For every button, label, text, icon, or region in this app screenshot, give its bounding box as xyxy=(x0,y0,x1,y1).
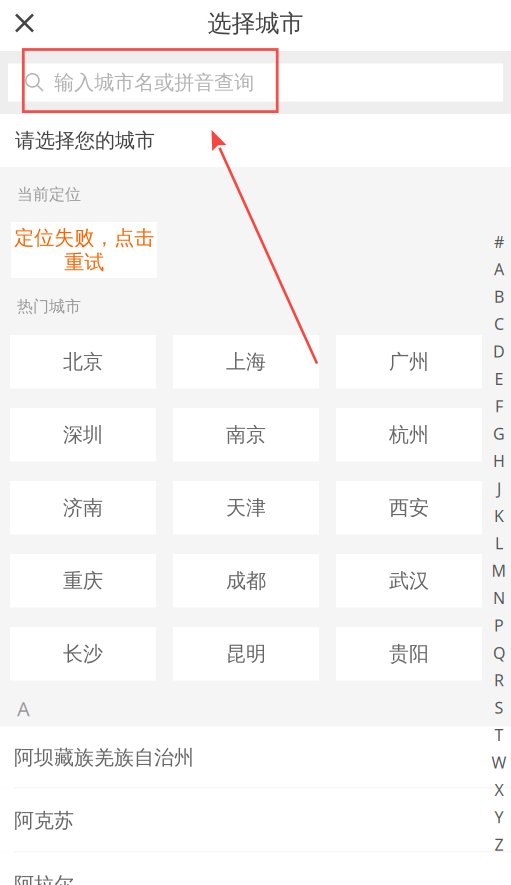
button[interactable]: Q xyxy=(487,639,511,666)
staticText: L xyxy=(495,532,503,554)
staticText: 定位失败，点击重试 xyxy=(14,225,154,274)
staticText: 武汉 xyxy=(389,568,429,593)
button[interactable]: H xyxy=(487,447,511,475)
button[interactable]: F xyxy=(487,392,511,420)
button[interactable]: 输入城市名或拼音查询 xyxy=(8,63,503,101)
button[interactable]: 贵阳 xyxy=(336,627,482,680)
staticText: 昆明 xyxy=(226,641,266,666)
button[interactable]: 定位失败，点击重试 xyxy=(11,222,157,278)
staticText: X xyxy=(494,779,503,800)
staticText: M xyxy=(491,560,506,581)
staticText: 天津 xyxy=(226,495,266,520)
staticText: 阿拉尔 xyxy=(14,872,74,885)
staticText: G xyxy=(493,423,505,444)
button[interactable]: Y xyxy=(487,803,511,831)
button[interactable]: Close xyxy=(0,0,49,48)
button[interactable]: 昆明 xyxy=(173,627,319,680)
button[interactable]: C xyxy=(487,310,511,338)
button[interactable]: B xyxy=(487,283,511,310)
button[interactable]: D xyxy=(487,338,511,365)
button[interactable]: 济南 xyxy=(10,481,156,534)
button[interactable]: # xyxy=(487,228,511,255)
button[interactable]: 西安 xyxy=(336,481,482,534)
staticText: 西安 xyxy=(389,495,429,520)
staticText: D xyxy=(493,341,505,362)
button[interactable]: 阿克苏 xyxy=(0,788,511,852)
staticText: 广州 xyxy=(389,349,429,374)
staticText: 阿克苏 xyxy=(14,808,74,833)
button[interactable]: R xyxy=(487,666,511,694)
button[interactable]: Z xyxy=(487,831,511,858)
staticText: 热门城市 xyxy=(17,297,81,316)
staticText: N xyxy=(493,587,505,608)
staticText: 济南 xyxy=(63,495,103,520)
button[interactable]: P xyxy=(487,612,511,639)
button[interactable]: W xyxy=(487,749,511,776)
button[interactable]: 杭州 xyxy=(336,408,482,461)
button[interactable]: 武汉 xyxy=(336,554,482,607)
staticText: W xyxy=(491,752,506,773)
staticText: B xyxy=(494,286,504,307)
staticText: H xyxy=(493,450,505,471)
staticText: 请选择您的城市 xyxy=(15,128,155,153)
button[interactable]: 天津 xyxy=(173,481,319,534)
staticText: Q xyxy=(493,642,505,663)
staticText: K xyxy=(494,505,504,526)
button[interactable]: G xyxy=(487,420,511,447)
staticText: 当前定位 xyxy=(17,185,81,204)
button[interactable]: N xyxy=(487,584,511,612)
button[interactable]: 南京 xyxy=(173,408,319,461)
staticText: T xyxy=(494,724,503,745)
button[interactable]: J xyxy=(487,475,511,502)
staticText: 南京 xyxy=(226,422,266,447)
button[interactable]: E xyxy=(487,365,511,392)
button[interactable]: 长沙 xyxy=(10,627,156,680)
staticText: 成都 xyxy=(226,568,266,593)
button[interactable]: A xyxy=(487,255,511,283)
button[interactable]: 阿拉尔 xyxy=(0,852,511,885)
staticText: J xyxy=(497,478,501,499)
button[interactable]: T xyxy=(487,721,511,749)
staticText: S xyxy=(494,697,503,718)
button[interactable]: 深圳 xyxy=(10,408,156,461)
button[interactable]: 阿坝藏族羌族自治州 xyxy=(0,726,511,788)
staticText: C xyxy=(494,313,504,334)
staticText: A xyxy=(494,258,504,280)
staticText: E xyxy=(494,368,503,389)
button[interactable]: K xyxy=(487,502,511,529)
staticText: 北京 xyxy=(63,349,103,374)
staticText: 长沙 xyxy=(63,641,103,666)
button[interactable]: 北京 xyxy=(10,335,156,388)
staticText: A xyxy=(17,695,30,722)
staticText: R xyxy=(494,669,504,691)
staticText: F xyxy=(495,395,503,417)
staticText: 深圳 xyxy=(63,422,103,447)
staticText: P xyxy=(494,615,504,636)
staticText: 重庆 xyxy=(63,568,103,593)
staticText: 阿坝藏族羌族自治州 xyxy=(14,745,194,770)
button[interactable]: 成都 xyxy=(173,554,319,607)
button[interactable]: X xyxy=(487,776,511,803)
staticText: 上海 xyxy=(226,349,266,374)
staticText: 杭州 xyxy=(389,422,429,447)
button[interactable]: S xyxy=(487,694,511,721)
staticText: 选择城市 xyxy=(207,9,303,38)
staticText: Z xyxy=(494,834,503,855)
button[interactable]: 上海 xyxy=(173,335,319,388)
button[interactable]: 广州 xyxy=(336,335,482,388)
staticText: # xyxy=(494,231,504,252)
staticText: Y xyxy=(494,806,503,828)
staticText: 贵阳 xyxy=(389,641,429,666)
button[interactable]: M xyxy=(487,557,511,584)
button[interactable]: L xyxy=(487,529,511,557)
staticText: 输入城市名或拼音查询 xyxy=(54,70,254,95)
button[interactable]: 重庆 xyxy=(10,554,156,607)
